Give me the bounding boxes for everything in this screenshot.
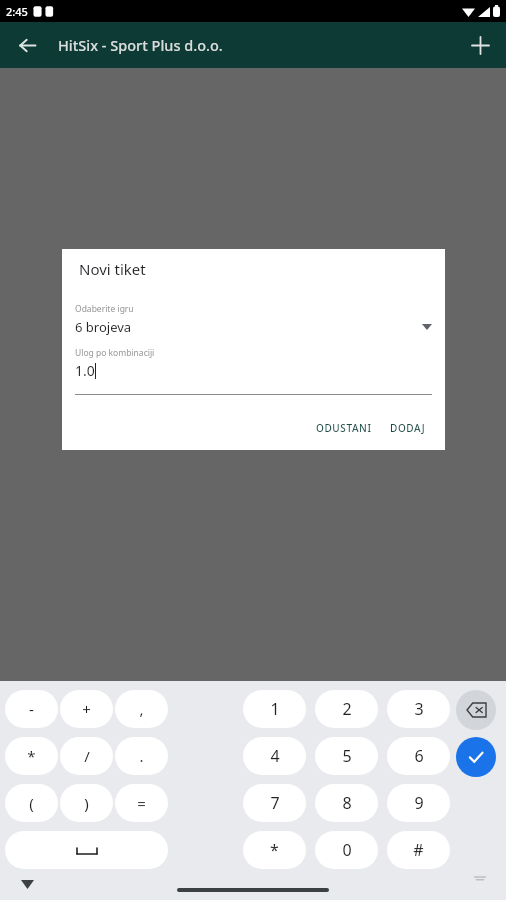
- staticText: Odaberite igru: [75, 303, 134, 315]
- staticText: .: [139, 746, 144, 766]
- button[interactable]: DODAJ: [383, 416, 433, 440]
- button[interactable]: 6: [387, 737, 450, 775]
- staticText: =: [137, 793, 146, 813]
- button[interactable]: ,: [115, 690, 168, 728]
- button[interactable]: 8: [315, 784, 378, 822]
- button[interactable]: -: [5, 690, 58, 728]
- staticText: 1: [270, 698, 280, 720]
- button[interactable]: /: [60, 737, 113, 775]
- staticText: 3: [414, 698, 424, 720]
- button[interactable]: *: [243, 831, 306, 869]
- staticText: Novi tiket: [79, 259, 146, 279]
- button[interactable]: Space: [5, 831, 168, 869]
- button[interactable]: Ulog po kombinaciji: [75, 347, 432, 395]
- staticText: /: [84, 746, 90, 766]
- button[interactable]: 9: [387, 784, 450, 822]
- button[interactable]: .: [115, 737, 168, 775]
- staticText: *: [27, 746, 36, 766]
- button[interactable]: 2: [315, 690, 378, 728]
- button[interactable]: 5: [315, 737, 378, 775]
- staticText: (: [29, 793, 34, 813]
- button[interactable]: =: [115, 784, 168, 822]
- button[interactable]: Add: [462, 27, 498, 63]
- button[interactable]: 7: [243, 784, 306, 822]
- staticText: HitSix - Sport Plus d.o.o.: [58, 35, 223, 55]
- staticText: 2: [342, 698, 352, 720]
- button[interactable]: Hide keyboard: [16, 873, 38, 895]
- staticText: 2:45: [6, 4, 28, 19]
- staticText: 5: [342, 745, 352, 767]
- staticText: ): [84, 793, 89, 813]
- staticText: ODUSTANI: [316, 421, 372, 435]
- button[interactable]: 3: [387, 690, 450, 728]
- button[interactable]: 1: [243, 690, 306, 728]
- button[interactable]: Enter: [456, 737, 496, 777]
- staticText: *: [270, 839, 279, 861]
- staticText: 6 brojeva: [75, 318, 132, 336]
- staticText: 4: [270, 745, 280, 767]
- button[interactable]: #: [387, 831, 450, 869]
- staticText: 7: [270, 792, 280, 814]
- button[interactable]: ODUSTANI: [309, 416, 379, 440]
- staticText: 9: [414, 792, 424, 814]
- staticText: Ulog po kombinaciji: [75, 347, 155, 359]
- button[interactable]: +: [60, 690, 113, 728]
- staticText: 6: [414, 745, 424, 767]
- button[interactable]: Backspace: [456, 690, 496, 730]
- button[interactable]: (: [5, 784, 58, 822]
- button[interactable]: Odaberite igru: [75, 303, 432, 347]
- button[interactable]: ): [60, 784, 113, 822]
- button[interactable]: 4: [243, 737, 306, 775]
- button[interactable]: Back: [8, 26, 46, 64]
- staticText: 0: [342, 839, 352, 861]
- button[interactable]: 0: [315, 831, 378, 869]
- staticText: 1.0: [75, 361, 95, 380]
- button[interactable]: *: [5, 737, 58, 775]
- staticText: #: [413, 839, 424, 861]
- staticText: +: [82, 699, 91, 719]
- staticText: DODAJ: [390, 421, 426, 435]
- staticText: ,: [139, 699, 144, 719]
- staticText: -: [29, 699, 34, 719]
- staticText: 8: [342, 792, 352, 814]
